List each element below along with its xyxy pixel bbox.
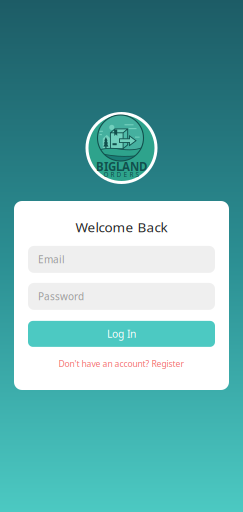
staticText: Welcome Back (75, 218, 167, 236)
staticText: Log In (107, 327, 136, 341)
button[interactable]: Password (28, 283, 215, 310)
staticText: BIGLAND (96, 159, 147, 174)
staticText: Don't have an account? Register (58, 358, 184, 369)
button[interactable]: Don't have an account? Register (28, 358, 215, 369)
staticText: Password (38, 290, 84, 303)
staticText: Email (38, 253, 65, 266)
button[interactable]: Email (28, 246, 215, 273)
button[interactable]: Log In (28, 321, 215, 347)
staticText: O R D E R S (103, 170, 139, 179)
